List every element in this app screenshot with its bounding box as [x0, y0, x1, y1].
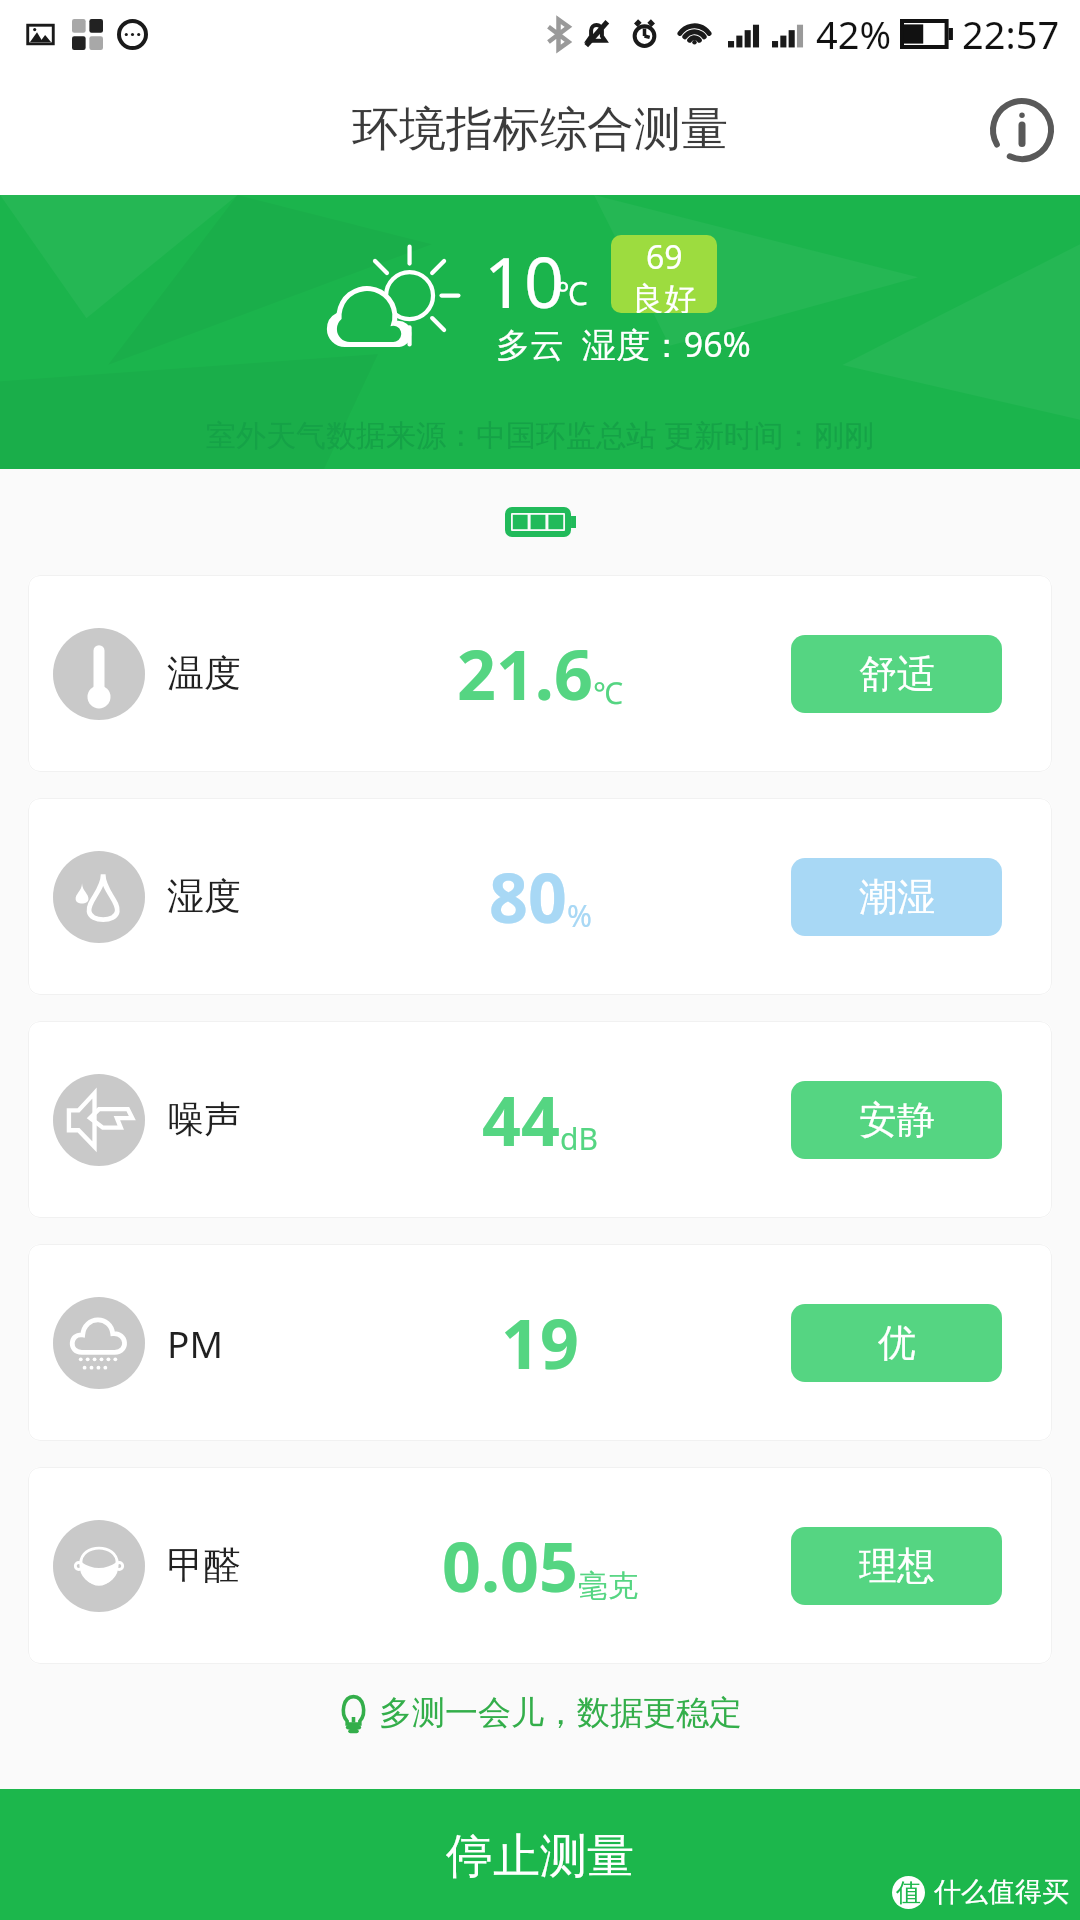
- staticText: 良好: [632, 279, 696, 313]
- staticText: 理想: [859, 1542, 935, 1590]
- staticText: 69: [646, 235, 683, 279]
- staticText: ℃: [556, 271, 588, 315]
- staticText: 42%: [816, 8, 892, 60]
- button[interactable]: 潮湿: [791, 858, 1002, 936]
- staticText: 10: [484, 233, 565, 328]
- staticText: 21.6: [457, 627, 593, 720]
- staticText: 22:57: [962, 8, 1060, 60]
- staticText: 值: [896, 1877, 921, 1908]
- staticText: 0.05: [442, 1519, 578, 1612]
- staticText: 什么值得买: [934, 1875, 1069, 1909]
- staticText: 停止测量: [446, 1827, 634, 1886]
- button[interactable]: 理想: [791, 1527, 1002, 1605]
- staticText: dB: [560, 1118, 598, 1159]
- staticText: 19: [501, 1296, 579, 1389]
- staticText: 安静: [859, 1096, 935, 1144]
- button[interactable]: 噪声: [28, 1021, 1052, 1218]
- staticText: 80: [489, 850, 567, 943]
- staticText: PM: [167, 1318, 223, 1368]
- staticText: 优: [878, 1319, 916, 1367]
- staticText: 湿度: [167, 873, 241, 920]
- staticText: 毫克: [578, 1567, 638, 1605]
- staticText: ℃: [593, 672, 623, 713]
- staticText: 舒适: [859, 650, 935, 698]
- button[interactable]: 安静: [791, 1081, 1002, 1159]
- staticText: 甲醛: [167, 1542, 241, 1589]
- staticText: %: [567, 895, 592, 936]
- button[interactable]: 舒适: [791, 635, 1002, 713]
- staticText: 噪声: [167, 1096, 241, 1143]
- staticText: 多云 湿度：96%: [496, 321, 751, 367]
- staticText: 温度: [167, 650, 241, 697]
- staticText: 44: [482, 1073, 560, 1166]
- button[interactable]: 停止测量: [0, 1789, 1080, 1920]
- button[interactable]: 温度: [28, 575, 1052, 772]
- button[interactable]: 甲醛: [28, 1467, 1052, 1664]
- button[interactable]: Info: [980, 88, 1064, 172]
- staticText: 室外天气数据来源：中国环监总站 更新时间：刚刚: [206, 414, 874, 455]
- staticText: 环境指标综合测量: [352, 100, 728, 159]
- staticText: 潮湿: [859, 873, 935, 921]
- button[interactable]: PM: [28, 1244, 1052, 1441]
- staticText: 多测一会儿，数据更稳定: [379, 1692, 742, 1734]
- button[interactable]: 湿度: [28, 798, 1052, 995]
- button[interactable]: 优: [791, 1304, 1002, 1382]
